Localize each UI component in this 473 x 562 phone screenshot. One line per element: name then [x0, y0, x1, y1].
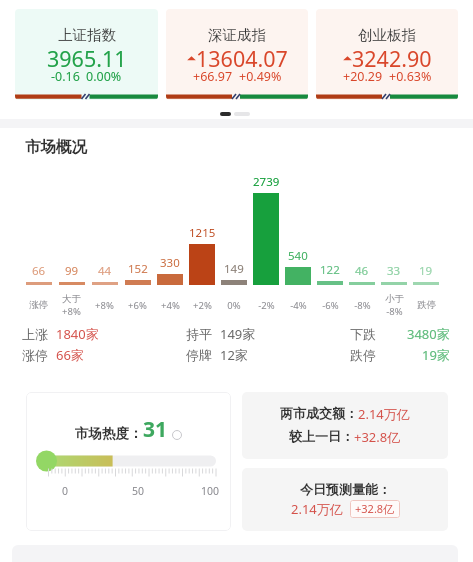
staticText: 50 [132, 484, 145, 498]
button[interactable]: 停牌 [186, 346, 286, 364]
staticText: 12家 [220, 346, 248, 364]
staticText: 540 [288, 248, 308, 264]
staticText: 市场热度： [75, 425, 143, 442]
button[interactable]: 市场热度： [26, 392, 231, 531]
staticText: -2% [258, 299, 275, 312]
other: 热度说明 [172, 430, 182, 440]
staticText: 创业板指 [358, 26, 416, 44]
button[interactable]: 上证指数 [15, 9, 158, 100]
button[interactable]: 涨停 [22, 346, 122, 364]
staticText: 3480家 [407, 325, 450, 343]
staticText: 上证指数 [58, 26, 116, 44]
staticText: +32.8亿 [355, 501, 395, 516]
staticText: 149家 [220, 325, 256, 343]
staticText: +4% [161, 299, 180, 312]
staticText: 跌停 [417, 299, 436, 311]
staticText: 小于 [385, 293, 404, 305]
staticText: -8% [354, 299, 371, 312]
button[interactable]: 跌停 [350, 346, 450, 364]
staticText: 44 [98, 263, 112, 279]
button[interactable]: 两市成交额： [242, 392, 448, 459]
button[interactable]: 深证成指 [166, 9, 308, 100]
staticText: 较上一日： [289, 428, 354, 444]
staticText: -0.16 [51, 68, 80, 85]
staticText: 2739 [253, 174, 280, 190]
staticText: +20.29 [343, 68, 383, 85]
staticText: 0 [62, 484, 69, 498]
staticText: -4% [290, 299, 307, 312]
staticText: 深证成指 [208, 26, 266, 44]
staticText: 大于 [62, 293, 81, 305]
staticText: +2% [193, 299, 212, 312]
button[interactable]: 创业板指 [316, 9, 458, 100]
staticText: 下跌 [350, 326, 376, 342]
staticText: 13604.07 [196, 44, 288, 73]
button[interactable]: 今日预测量能： [242, 468, 448, 531]
staticText: 3965.11 [47, 44, 127, 73]
staticText: -6% [322, 299, 339, 312]
button[interactable]: 下跌 [350, 325, 450, 343]
staticText: 今日预测量能： [300, 481, 391, 497]
staticText: 149 [224, 261, 244, 277]
staticText: +66.97 [193, 68, 233, 85]
staticText: 跌停 [350, 347, 376, 363]
staticText: 66 [32, 263, 46, 279]
staticText: 1840家 [56, 325, 99, 343]
staticText: 涨停 [22, 347, 48, 363]
staticText: 19 [419, 263, 433, 279]
staticText: 涨停 [29, 299, 48, 311]
staticText: 上涨 [22, 326, 48, 342]
staticText: 停牌 [186, 347, 212, 363]
staticText: 31 [143, 415, 168, 444]
staticText: 330 [160, 255, 180, 271]
staticText: 2.14万亿 [358, 405, 410, 423]
staticText: 19家 [422, 346, 450, 364]
staticText: +0.63% [389, 68, 432, 85]
button[interactable]: 持平 [186, 325, 286, 343]
staticText: 0% [227, 299, 241, 312]
staticText: 两市成交额： [280, 405, 358, 421]
staticText: 0.00% [86, 68, 122, 85]
staticText: -8% [386, 305, 403, 318]
staticText: 66家 [56, 346, 84, 364]
staticText: +8% [95, 299, 114, 312]
staticText: 122 [320, 262, 340, 278]
staticText: +8% [62, 305, 81, 318]
staticText: 46 [355, 263, 369, 279]
staticText: 市场概况 [25, 137, 87, 157]
staticText: +0.49% [239, 68, 282, 85]
staticText: 2.14万亿 [291, 500, 343, 518]
staticText: 1215 [189, 225, 216, 241]
staticText: 33 [387, 263, 401, 279]
staticText: 3242.90 [352, 44, 432, 73]
staticText: 100 [201, 484, 220, 498]
staticText: 99 [65, 263, 79, 279]
staticText: 152 [128, 261, 148, 277]
staticText: 持平 [186, 326, 212, 342]
staticText: +6% [128, 299, 147, 312]
staticText: +32.8亿 [354, 428, 401, 446]
button[interactable]: 上涨 [22, 325, 122, 343]
